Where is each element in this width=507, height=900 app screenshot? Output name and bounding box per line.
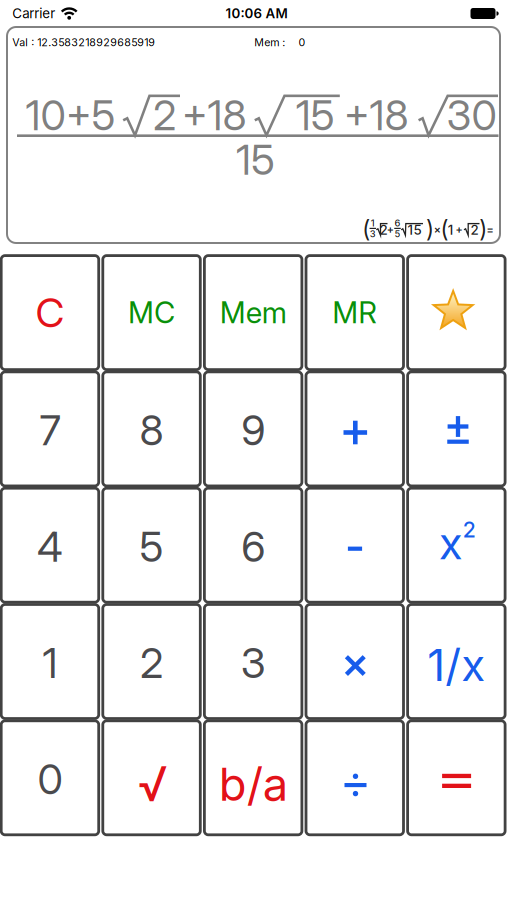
button[interactable]: 8 (103, 372, 200, 486)
staticText: 1 (42, 638, 57, 687)
staticText: Mem (220, 295, 287, 330)
staticText: ) (426, 216, 434, 243)
staticText: 2 (470, 222, 478, 238)
staticText: Mem : (254, 36, 285, 49)
staticText: 1/x (427, 639, 485, 691)
staticText: ) (479, 216, 487, 243)
staticText: 1 (448, 222, 454, 238)
button[interactable]: √ (103, 721, 200, 835)
staticText: MR (332, 295, 377, 330)
button[interactable]: 1 (1, 604, 99, 718)
staticText: Val : 12.3583218929685919 (12, 36, 155, 49)
staticText: 0 (298, 36, 305, 49)
button[interactable]: 5 (103, 488, 200, 602)
staticText: 15 (296, 91, 335, 140)
staticText: Carrier (12, 6, 55, 21)
staticText: 15 (236, 135, 275, 184)
button[interactable]: Multiply (306, 604, 403, 718)
button[interactable]: Favorites (408, 256, 505, 370)
staticText: 9 (241, 406, 265, 455)
staticText: 2 (140, 638, 163, 687)
button[interactable]: Mem (204, 256, 302, 370)
button[interactable]: 0 (1, 721, 99, 835)
button[interactable]: 1/x (408, 604, 505, 718)
button[interactable]: Square (408, 488, 505, 602)
staticText: √ (138, 755, 168, 812)
button[interactable]: 2 (103, 604, 200, 718)
staticText: ( (440, 216, 448, 243)
staticText: b/a (219, 758, 288, 811)
staticText: x (439, 517, 463, 569)
staticText: +18 (181, 91, 246, 140)
button[interactable]: Plus minus (408, 372, 505, 486)
staticText: 0 (37, 755, 62, 804)
button[interactable]: b/a (204, 721, 302, 835)
staticText: 3 (370, 228, 376, 239)
button[interactable]: 9 (204, 372, 302, 486)
staticText: MC (128, 295, 175, 330)
button[interactable]: Equals (408, 721, 505, 835)
button[interactable]: 7 (1, 372, 99, 486)
button[interactable]: Subtract (306, 488, 403, 602)
staticText: 30 (446, 91, 496, 140)
staticText: ( (362, 216, 370, 243)
staticText: C (35, 289, 64, 336)
staticText: 2 (463, 517, 476, 542)
staticText: × (434, 223, 441, 236)
button[interactable]: C (1, 256, 99, 370)
staticText: 1 (371, 218, 375, 229)
staticText: 10+5 (25, 91, 115, 140)
staticText: 2 (153, 91, 176, 140)
staticText: 15 (408, 222, 422, 238)
button[interactable]: MR (306, 256, 403, 370)
button[interactable]: 3 (204, 604, 302, 718)
staticText: 6 (394, 218, 400, 229)
staticText: 10:06 AM (225, 6, 287, 21)
button[interactable]: Divide (306, 721, 403, 835)
staticText: + (455, 223, 462, 236)
staticText: 7 (39, 406, 60, 455)
staticText: 8 (140, 406, 164, 455)
staticText: +18 (343, 91, 408, 140)
button[interactable]: MC (103, 256, 200, 370)
staticText: 6 (241, 522, 265, 571)
button[interactable]: 4 (1, 488, 99, 602)
staticText: 5 (394, 228, 400, 239)
staticText: + (387, 223, 394, 236)
staticText: 4 (37, 522, 63, 571)
staticText: 5 (140, 522, 164, 571)
button[interactable]: 6 (204, 488, 302, 602)
button[interactable]: Add (306, 372, 403, 486)
staticText: = (486, 223, 493, 236)
staticText: 3 (241, 638, 266, 687)
staticText: 2 (379, 222, 387, 238)
